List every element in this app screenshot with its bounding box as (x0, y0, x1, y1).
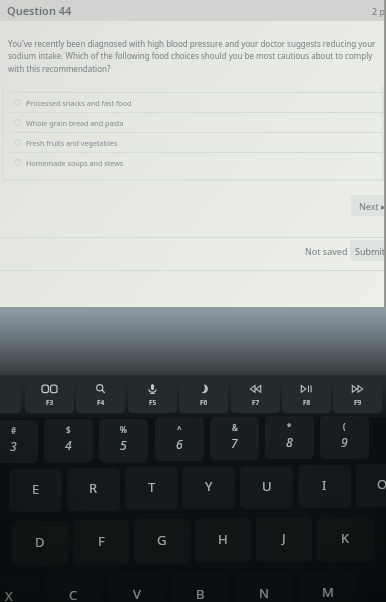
staticText: Homemade soups and stews (26, 158, 124, 168)
button[interactable]: Dictation (128, 377, 177, 413)
staticText: F7 (252, 398, 260, 407)
button[interactable]: ^ (155, 418, 204, 461)
button[interactable]: G (134, 519, 190, 564)
button[interactable]: $ (44, 419, 93, 462)
staticText: I (322, 476, 327, 494)
staticText: N (259, 584, 269, 602)
button[interactable]: V (108, 573, 166, 602)
staticText: D (35, 533, 45, 551)
staticText: * (287, 421, 292, 432)
button[interactable]: O (356, 464, 386, 507)
staticText: M (322, 583, 334, 601)
button[interactable]: N (235, 572, 293, 602)
button[interactable]: D (12, 521, 68, 566)
staticText: & (232, 422, 238, 433)
button[interactable]: Fast Forward (333, 377, 382, 413)
button[interactable]: Processed snacks and fast food (3, 93, 383, 112)
button[interactable]: & (210, 417, 259, 460)
staticText: Submit (355, 245, 386, 257)
staticText: Y (205, 477, 213, 495)
button[interactable]: U (240, 466, 293, 509)
staticText: O (377, 475, 386, 493)
staticText: Processed snacks and fast food (26, 98, 132, 108)
staticText: X (5, 587, 13, 602)
button[interactable]: R (67, 468, 120, 511)
staticText: % (120, 424, 127, 435)
button[interactable]: * (265, 416, 314, 459)
staticText: Not saved (305, 245, 348, 257)
button[interactable]: I (298, 465, 351, 508)
staticText: E (32, 480, 40, 498)
staticText: F8 (303, 398, 311, 407)
button[interactable]: Rewind (231, 377, 280, 413)
button[interactable]: % (99, 419, 148, 462)
staticText: Question 44 (7, 3, 72, 18)
staticText: F9 (354, 398, 362, 407)
staticText: R (89, 479, 98, 497)
button[interactable]: Y (182, 466, 235, 509)
staticText: Whole grain bread and pasta (26, 118, 124, 128)
staticText: B (196, 585, 205, 602)
button[interactable]: K (317, 517, 373, 562)
button[interactable]: E (9, 469, 62, 512)
staticText: G (157, 531, 167, 549)
button[interactable]: # (0, 420, 38, 463)
staticText: 5 (120, 437, 127, 453)
staticText: 7 (231, 435, 238, 451)
staticText: F5 (149, 398, 157, 407)
staticText: V (133, 585, 141, 602)
staticText: U (262, 477, 272, 495)
staticText: You've recently been diagnosed with high… (8, 38, 380, 75)
button[interactable]: ( (320, 416, 369, 459)
staticText: T (148, 478, 156, 496)
staticText: ( (343, 421, 346, 432)
button[interactable]: Do Not Disturb (179, 377, 228, 413)
staticText: C (69, 586, 78, 602)
staticText: 2 p (372, 5, 386, 17)
staticText: F4 (97, 398, 105, 407)
button[interactable]: C (44, 574, 102, 602)
staticText: Fresh fruits and vegetables (26, 138, 118, 148)
button[interactable]: T (125, 467, 178, 510)
staticText: J (282, 529, 286, 547)
staticText: Next ▸ (359, 200, 386, 212)
button[interactable]: Next ▸ (351, 195, 386, 216)
staticText: ^ (177, 423, 182, 434)
button[interactable]: H (195, 518, 251, 563)
button[interactable]: Whole grain bread and pasta (3, 113, 383, 132)
button[interactable]: F (73, 520, 129, 565)
staticText: F (98, 532, 105, 550)
button[interactable]: J (256, 517, 312, 562)
staticText: 4 (65, 437, 72, 453)
button[interactable]: Play Pause (282, 377, 331, 413)
button[interactable]: Spotlight Search (76, 377, 125, 413)
staticText: H (218, 530, 228, 548)
staticText: 3 (10, 438, 17, 454)
button[interactable]: Submit (350, 240, 386, 261)
staticText: K (341, 529, 350, 547)
button[interactable]: M (299, 571, 357, 602)
button[interactable]: Mission Control (25, 377, 74, 413)
staticText: F6 (200, 398, 208, 407)
button[interactable]: Homemade soups and stews (3, 153, 383, 172)
staticText: 6 (176, 436, 183, 452)
staticText: # (11, 425, 17, 436)
staticText: 9 (341, 434, 348, 450)
staticText: 8 (286, 434, 293, 450)
button[interactable]: Fresh fruits and vegetables (3, 133, 383, 152)
staticText: F3 (46, 398, 54, 407)
button[interactable]: X (0, 575, 38, 602)
button[interactable]: B (171, 573, 229, 602)
staticText: $ (66, 424, 71, 435)
